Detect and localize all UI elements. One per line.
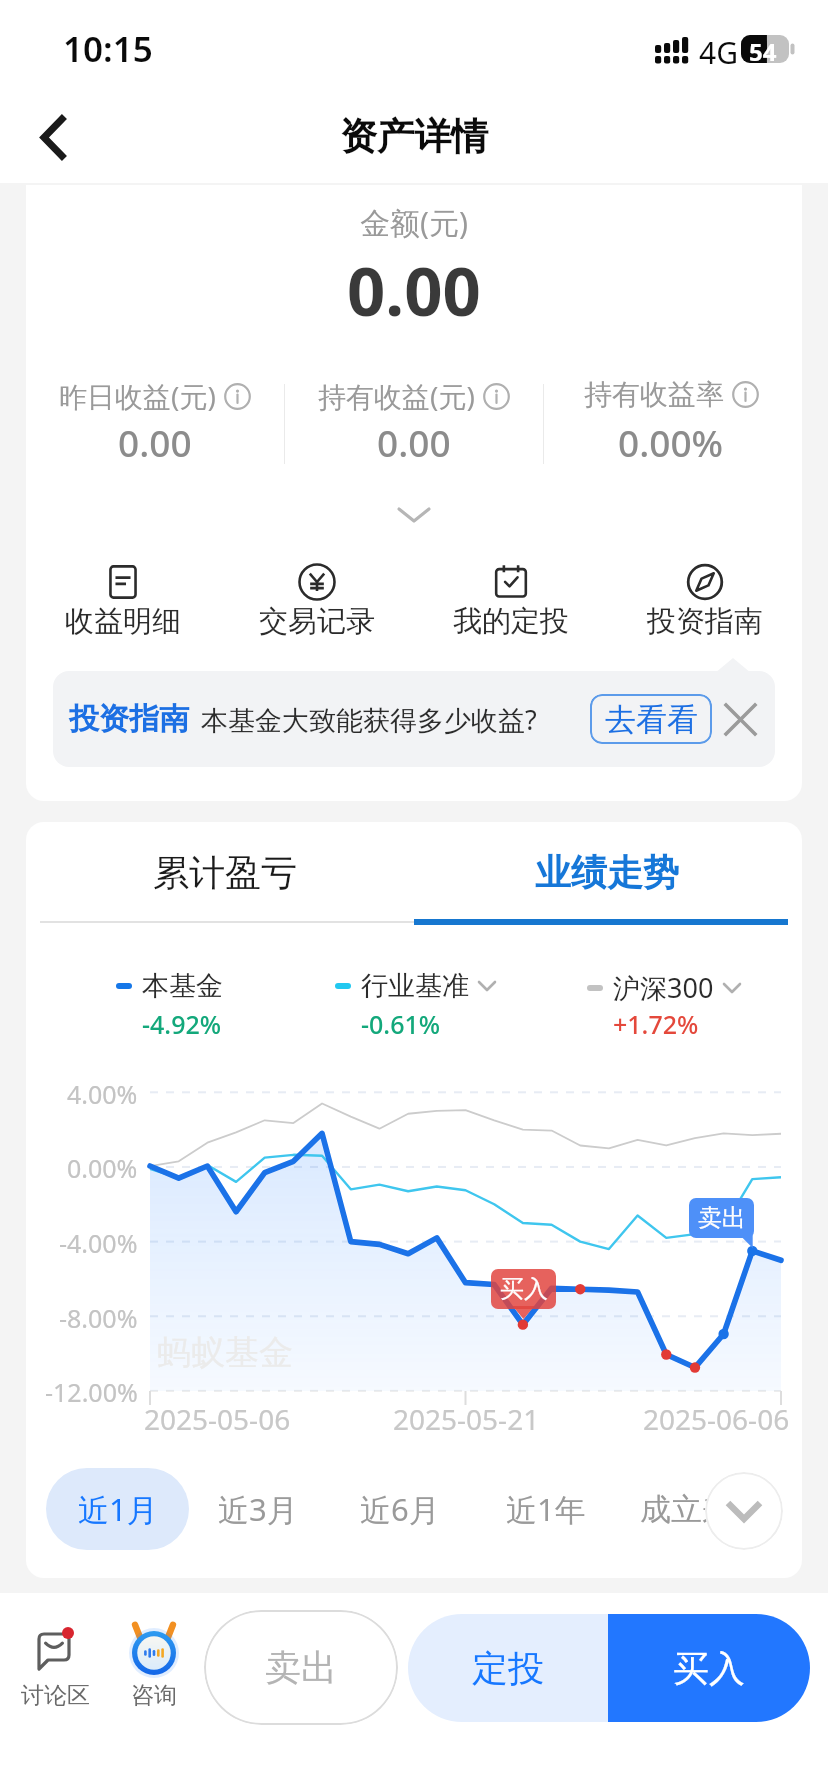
button[interactable]: 收益明细 xyxy=(26,555,220,665)
button[interactable]: 近3月 xyxy=(186,1468,329,1550)
staticText: 沪深300 xyxy=(613,969,714,1006)
button[interactable]: 成立来 xyxy=(615,1468,758,1550)
button[interactable]: 本基金 xyxy=(116,962,316,1042)
staticText: 0.00% xyxy=(618,417,724,467)
staticText: 2025-05-21 xyxy=(393,1400,540,1438)
staticText: 咨询 xyxy=(131,1681,177,1710)
staticText: 本基金大致能获得多少收益? xyxy=(201,701,537,738)
button[interactable]: 买入 xyxy=(608,1614,810,1722)
button[interactable]: 定投 xyxy=(408,1614,608,1722)
button[interactable]: 我的定投 xyxy=(414,555,608,665)
staticText: 买入 xyxy=(673,1646,745,1691)
staticText: 卖出 xyxy=(265,1645,337,1690)
button[interactable]: 沪深300 xyxy=(587,962,787,1042)
staticText: 蚂蚁基金 xyxy=(157,1331,293,1374)
staticText: 本基金 xyxy=(142,969,223,1003)
staticText: 金额(元) xyxy=(360,202,468,243)
staticText: 近1月 xyxy=(78,1488,158,1530)
button[interactable]: 昨日收益(元) xyxy=(26,365,285,475)
button[interactable]: 卖出 xyxy=(204,1610,398,1725)
button[interactable]: Back xyxy=(12,97,92,177)
staticText: 持有收益率 xyxy=(584,377,724,412)
button[interactable]: 行业基准 xyxy=(335,962,535,1042)
staticText: 0.00% xyxy=(67,1151,138,1185)
staticText: 持有收益(元) xyxy=(318,377,475,415)
button[interactable]: More periods xyxy=(705,1472,783,1550)
staticText: 近3月 xyxy=(218,1488,298,1530)
staticText: 行业基准 xyxy=(361,969,469,1003)
staticText: 昨日收益(元) xyxy=(59,377,216,415)
button[interactable]: 投资指南 xyxy=(608,555,802,665)
staticText: 讨论区 xyxy=(21,1681,90,1710)
staticText: -0.61% xyxy=(361,1007,441,1041)
staticText: 我的定投 xyxy=(453,603,569,640)
button[interactable]: 累计盈亏 xyxy=(31,822,419,922)
staticText: 定投 xyxy=(472,1646,544,1691)
staticText: 投资指南 xyxy=(647,603,763,640)
staticText: 4G xyxy=(699,32,738,73)
staticText: 交易记录 xyxy=(259,603,375,640)
staticText: 4.00% xyxy=(67,1077,138,1111)
staticText: 0.00 xyxy=(347,244,481,335)
staticText: -8.00% xyxy=(59,1301,138,1335)
staticText: 54 xyxy=(749,35,777,63)
staticText: 2025-05-06 xyxy=(144,1400,291,1438)
staticText: 业绩走势 xyxy=(535,850,679,895)
button[interactable]: 持有收益率 xyxy=(541,365,801,475)
staticText: 卖出 xyxy=(698,1203,746,1233)
staticText: 资产详情 xyxy=(340,113,488,160)
button[interactable]: 去看看 xyxy=(590,694,712,744)
button[interactable]: 交易记录 xyxy=(220,555,414,665)
staticText: 收益明细 xyxy=(65,603,181,640)
staticText: 近6月 xyxy=(360,1488,440,1530)
staticText: 2025-06-06 xyxy=(643,1400,790,1438)
button[interactable]: 讨论区 xyxy=(5,1615,105,1740)
staticText: 10:15 xyxy=(63,25,153,73)
button[interactable]: 咨询 xyxy=(104,1615,204,1740)
button[interactable]: 业绩走势 xyxy=(413,822,801,922)
staticText: 0.00 xyxy=(118,417,192,467)
staticText: 去看看 xyxy=(605,700,698,739)
staticText: 投资指南 xyxy=(69,700,189,738)
button[interactable]: Expand xyxy=(374,495,454,535)
button[interactable]: 近6月 xyxy=(328,1468,471,1550)
staticText: 累计盈亏 xyxy=(153,850,297,895)
staticText: 成立来 xyxy=(640,1490,733,1529)
button[interactable]: 持有收益(元) xyxy=(284,365,544,475)
staticText: 买入 xyxy=(500,1274,548,1304)
staticText: +1.72% xyxy=(613,1007,699,1041)
button[interactable]: 近1年 xyxy=(474,1468,617,1550)
staticText: -12.00% xyxy=(45,1375,138,1409)
button[interactable]: Close xyxy=(720,699,760,739)
staticText: 0.00 xyxy=(377,417,451,467)
staticText: 近1年 xyxy=(506,1488,586,1530)
staticText: -4.00% xyxy=(59,1226,138,1260)
staticText: -4.92% xyxy=(142,1007,222,1041)
button[interactable]: 投资指南 xyxy=(53,671,775,767)
button[interactable]: 近1月 xyxy=(46,1468,189,1550)
